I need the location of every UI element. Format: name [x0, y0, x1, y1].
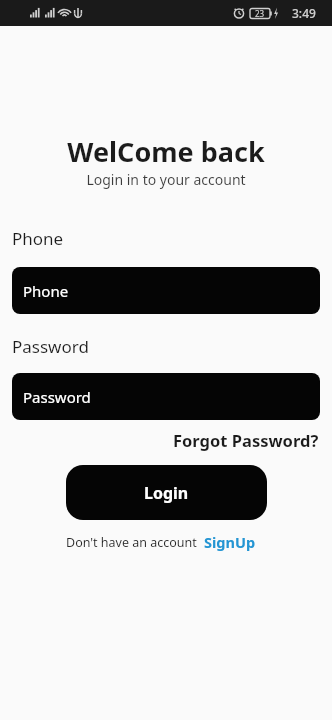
staticText: Phone [23, 281, 69, 301]
button[interactable]: Login [66, 465, 267, 520]
button[interactable]: Password [12, 373, 320, 420]
staticText: WelCome back [0, 133, 332, 170]
staticText: Login in to your account [0, 170, 332, 189]
staticText: Password [12, 335, 89, 358]
staticText: Password [23, 387, 91, 407]
staticText: 3:49 [292, 5, 316, 21]
staticText: Login [144, 482, 189, 504]
button[interactable]: Forgot Password? [173, 429, 319, 451]
button[interactable]: SignUp [204, 532, 256, 552]
staticText: Phone [12, 227, 64, 250]
button[interactable]: Phone [12, 267, 320, 314]
staticText: Don't have an account [66, 534, 197, 551]
staticText: 23 [255, 8, 265, 19]
